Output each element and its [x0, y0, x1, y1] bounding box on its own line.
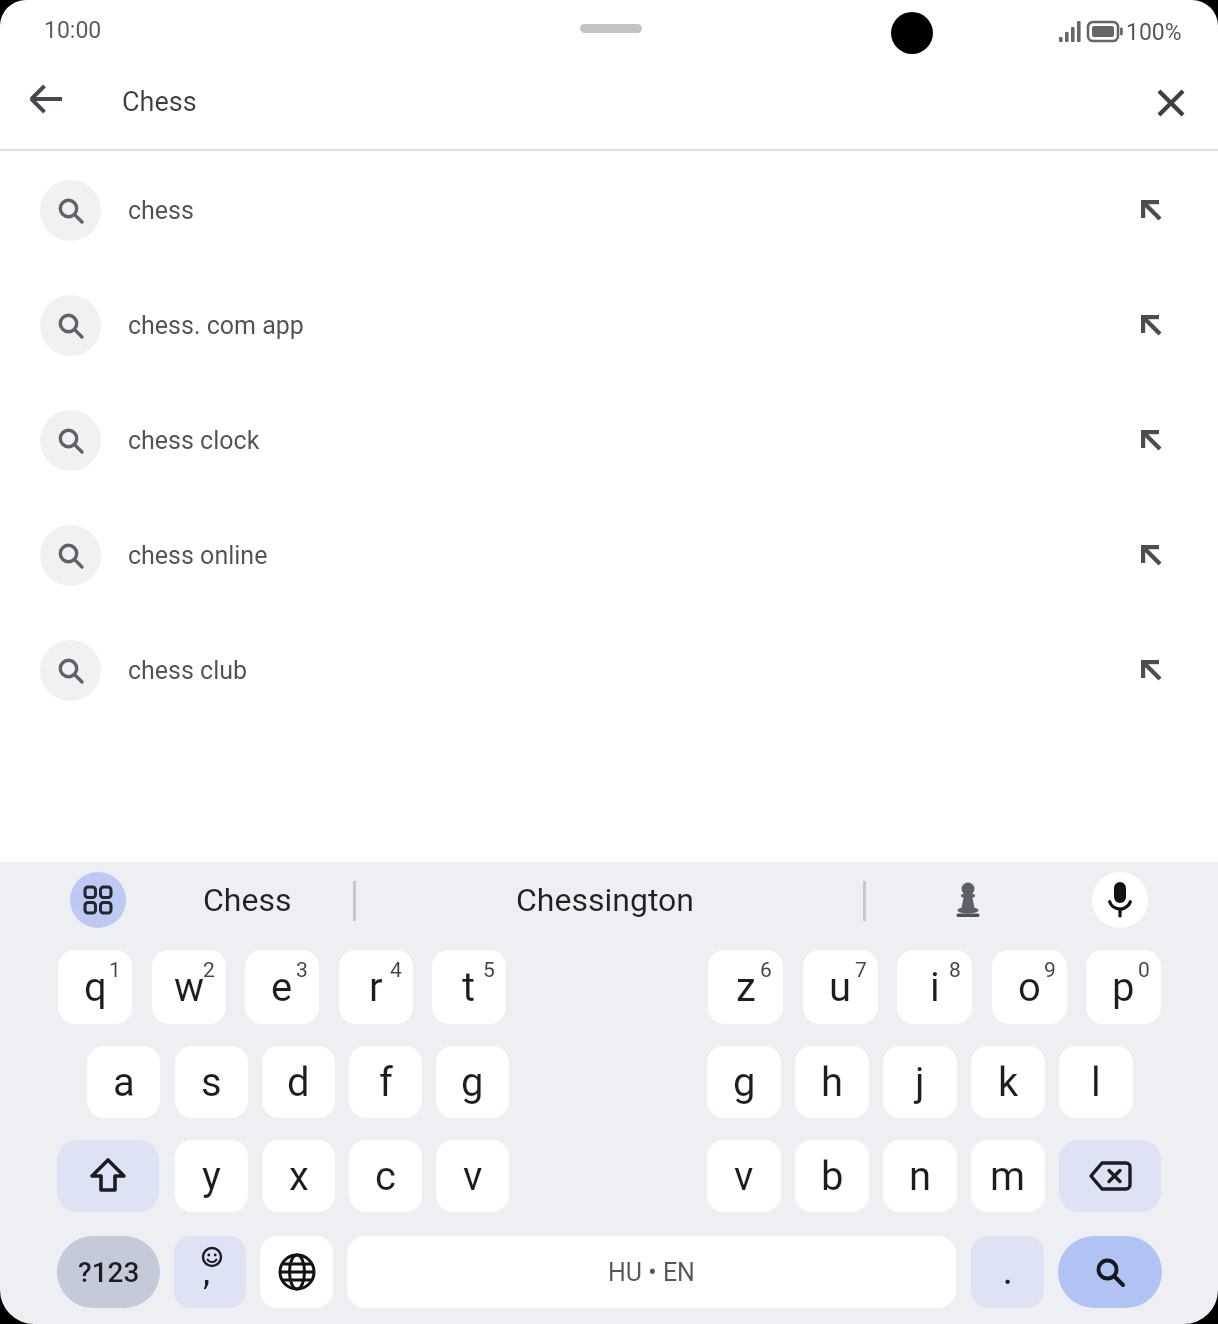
button[interactable]: v: [436, 1140, 509, 1212]
staticText: u: [829, 964, 852, 1011]
staticText: c: [375, 1153, 396, 1200]
staticText: n: [909, 1153, 932, 1200]
staticText: .: [1003, 1252, 1013, 1292]
button[interactable]: p: [1086, 950, 1161, 1024]
button[interactable]: w: [152, 950, 226, 1024]
button[interactable]: q: [58, 950, 132, 1024]
staticText: g: [733, 1059, 756, 1106]
button[interactable]: g: [707, 1046, 781, 1118]
staticText: w: [174, 964, 205, 1011]
button[interactable]: z: [708, 950, 783, 1024]
staticText: 4: [390, 958, 402, 983]
button[interactable]: chess online: [0, 498, 1218, 613]
staticText: h: [821, 1059, 844, 1106]
button[interactable]: HU • EN: [347, 1236, 956, 1308]
button[interactable]: i: [897, 950, 972, 1024]
staticText: 6: [760, 958, 772, 983]
button[interactable]: [174, 1236, 246, 1308]
staticText: y: [202, 1153, 221, 1200]
button[interactable]: t: [432, 950, 506, 1024]
button[interactable]: j: [883, 1046, 957, 1118]
staticText: j: [915, 1059, 925, 1106]
staticText: b: [821, 1153, 844, 1200]
button[interactable]: g: [436, 1046, 509, 1118]
button[interactable]: chess. com app: [0, 268, 1218, 383]
button[interactable]: u: [803, 950, 878, 1024]
staticText: i: [930, 964, 940, 1011]
staticText: chess clock: [128, 426, 260, 455]
button[interactable]: v: [707, 1140, 781, 1212]
staticText: p: [1112, 964, 1135, 1011]
staticText: 7: [855, 958, 867, 983]
button[interactable]: r: [339, 950, 413, 1024]
button[interactable]: o: [992, 950, 1067, 1024]
staticText: q: [84, 964, 107, 1011]
staticText: 9: [1044, 958, 1056, 983]
staticText: x: [289, 1153, 309, 1200]
staticText: r: [369, 964, 383, 1011]
button[interactable]: m: [971, 1140, 1045, 1212]
staticText: ?123: [78, 1256, 140, 1289]
button[interactable]: a: [87, 1046, 160, 1118]
staticText: 8: [949, 958, 961, 983]
button[interactable]: [57, 1140, 159, 1212]
staticText: 100%: [1126, 19, 1182, 46]
button[interactable]: [20, 75, 76, 131]
staticText: f: [379, 1059, 393, 1106]
staticText: m: [990, 1153, 1026, 1200]
staticText: d: [287, 1059, 310, 1106]
button[interactable]: n: [883, 1140, 957, 1212]
button[interactable]: h: [795, 1046, 869, 1118]
button[interactable]: ?123: [57, 1236, 160, 1308]
button[interactable]: [1058, 1236, 1162, 1308]
staticText: 2: [203, 958, 215, 983]
button[interactable]: .: [971, 1236, 1044, 1308]
button[interactable]: b: [795, 1140, 869, 1212]
staticText: Chess: [203, 881, 292, 919]
staticText: 1: [109, 958, 121, 983]
button[interactable]: y: [175, 1140, 248, 1212]
button[interactable]: chess club: [0, 613, 1218, 728]
staticText: v: [463, 1153, 483, 1200]
staticText: 3: [296, 958, 308, 983]
staticText: chess: [128, 196, 194, 225]
button[interactable]: s: [175, 1046, 248, 1118]
button[interactable]: k: [971, 1046, 1045, 1118]
staticText: z: [736, 964, 756, 1011]
button[interactable]: [1143, 75, 1199, 131]
staticText: HU • EN: [608, 1258, 695, 1287]
staticText: chess online: [128, 541, 268, 570]
button[interactable]: [930, 870, 1006, 930]
staticText: 5: [483, 958, 495, 983]
staticText: chess club: [128, 656, 248, 685]
button[interactable]: [1059, 1140, 1161, 1212]
staticText: 0: [1138, 958, 1150, 983]
button[interactable]: e: [245, 950, 319, 1024]
staticText: v: [734, 1153, 754, 1200]
button[interactable]: Chessington: [375, 870, 835, 930]
button[interactable]: [70, 872, 126, 928]
staticText: g: [461, 1059, 484, 1106]
staticText: k: [998, 1059, 1019, 1106]
staticText: a: [113, 1059, 135, 1106]
button[interactable]: c: [349, 1140, 422, 1212]
staticText: s: [201, 1059, 222, 1106]
button[interactable]: x: [262, 1140, 335, 1212]
staticText: o: [1018, 964, 1041, 1011]
staticText: t: [462, 964, 476, 1011]
staticText: chess. com app: [128, 311, 304, 340]
staticText: 10:00: [44, 17, 102, 44]
button[interactable]: chess: [0, 153, 1218, 268]
button[interactable]: l: [1059, 1046, 1133, 1118]
button[interactable]: [260, 1236, 333, 1308]
staticText: l: [1091, 1059, 1101, 1106]
button[interactable]: d: [262, 1046, 335, 1118]
button[interactable]: Chess: [160, 870, 335, 930]
button[interactable]: chess clock: [0, 383, 1218, 498]
staticText: Chess: [122, 86, 197, 118]
button[interactable]: [1092, 872, 1148, 928]
button[interactable]: f: [349, 1046, 422, 1118]
staticText: e: [271, 964, 293, 1011]
staticText: Chessington: [516, 881, 694, 919]
